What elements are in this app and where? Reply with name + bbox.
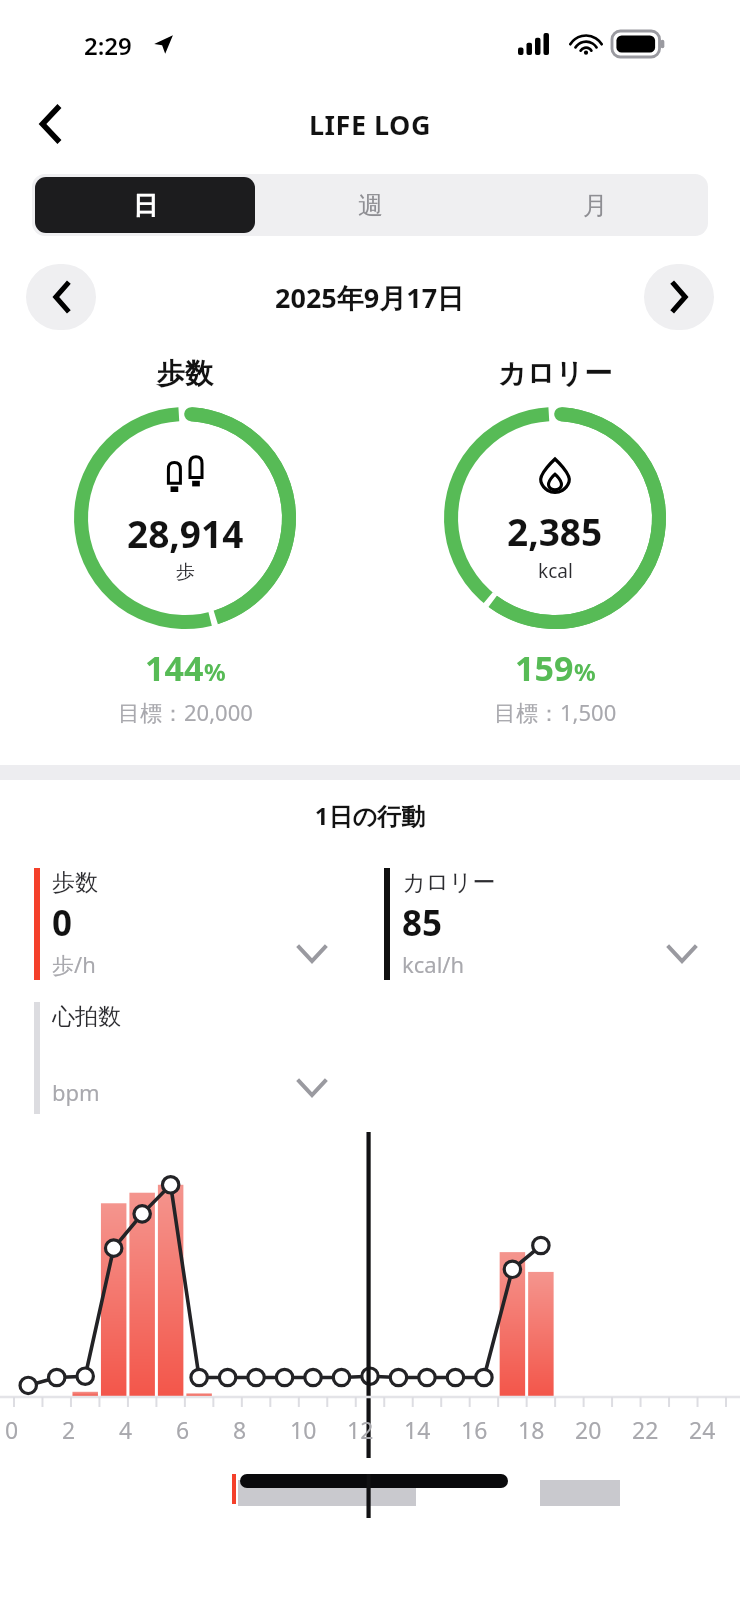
staticText: 20	[575, 1414, 602, 1445]
staticText: 12	[347, 1414, 374, 1445]
staticText: 4	[119, 1414, 133, 1445]
staticText: カロリー	[498, 356, 612, 391]
button[interactable]: カロリー	[370, 356, 740, 727]
staticText: 159	[515, 645, 574, 691]
staticText: 10	[290, 1414, 317, 1445]
staticText: 0	[52, 899, 73, 947]
staticText: 6	[176, 1414, 190, 1445]
button[interactable]: 歩数	[0, 356, 370, 727]
staticText: 月	[583, 190, 608, 221]
staticText: 歩数	[157, 356, 213, 391]
staticText: 16	[461, 1414, 488, 1445]
staticText: kcal	[538, 558, 573, 584]
staticText: 歩/h	[52, 949, 96, 979]
button[interactable]: 月	[486, 177, 705, 233]
staticText: 歩	[176, 560, 195, 584]
staticText: 18	[518, 1414, 545, 1445]
staticText: 28,914	[127, 508, 244, 558]
staticText: 2	[62, 1414, 76, 1445]
button[interactable]: 心拍数	[34, 1002, 121, 1114]
staticText: 2,385	[507, 506, 603, 556]
staticText: %	[574, 655, 596, 688]
staticText: 週	[358, 190, 383, 221]
staticText: bpm	[52, 1077, 100, 1107]
button[interactable]: カロリー	[384, 868, 496, 980]
staticText: 歩数	[52, 868, 98, 897]
staticText: 目標：20,000	[118, 697, 253, 727]
button[interactable]: Next day	[644, 264, 714, 330]
staticText: 日	[133, 190, 158, 221]
button[interactable]: Back	[22, 96, 78, 152]
button[interactable]: Expand	[660, 932, 704, 976]
button[interactable]: 歩数	[34, 868, 98, 980]
staticText: 8	[233, 1414, 247, 1445]
staticText: %	[204, 655, 226, 688]
button[interactable]: 週	[261, 177, 480, 233]
staticText: 14	[404, 1414, 431, 1445]
staticText: 2:29	[84, 29, 132, 62]
button[interactable]: 日	[35, 177, 255, 233]
staticText: LIFE LOG	[309, 106, 432, 143]
staticText: 目標：1,500	[494, 697, 617, 727]
button[interactable]: Expand	[290, 932, 334, 976]
button[interactable]: Previous day	[26, 264, 96, 330]
staticText: カロリー	[402, 868, 496, 897]
staticText: 心拍数	[52, 1002, 121, 1031]
staticText: 22	[632, 1414, 659, 1445]
staticText: 0	[5, 1414, 19, 1445]
staticText: 85	[402, 899, 443, 947]
staticText: 24	[689, 1414, 716, 1445]
staticText: 144	[145, 645, 204, 691]
button[interactable]: Scrub	[240, 1474, 508, 1488]
staticText: kcal/h	[402, 949, 465, 979]
staticText: 2025年9月17日	[275, 279, 465, 316]
staticText: 1日の行動	[0, 799, 740, 832]
button[interactable]: Expand	[290, 1066, 334, 1110]
